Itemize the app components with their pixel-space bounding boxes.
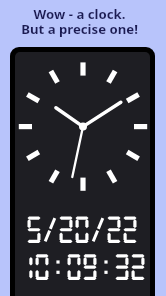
staticText: Wow - a clock. But a precise one! bbox=[0, 5, 159, 38]
